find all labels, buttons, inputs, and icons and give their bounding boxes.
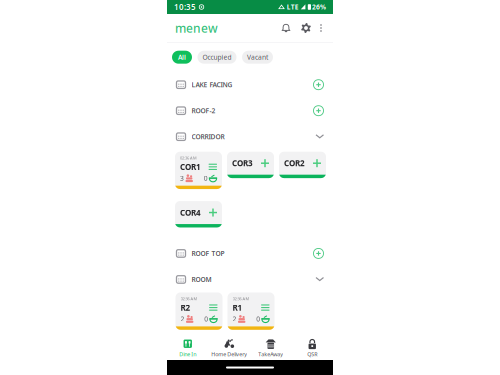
button[interactable]: ROOM bbox=[167, 266, 333, 292]
button[interactable]: ROOF-2 bbox=[167, 98, 333, 124]
button[interactable]: Occupied bbox=[197, 51, 236, 64]
staticText: COR4 bbox=[180, 207, 201, 218]
staticText: ROOM bbox=[191, 275, 211, 284]
button[interactable]: 02:36 AM bbox=[175, 152, 222, 189]
staticText: 02:36 AM bbox=[180, 296, 197, 301]
staticText: 02:36 AM bbox=[232, 296, 249, 301]
staticText: LAKE FACING bbox=[191, 80, 232, 89]
button[interactable]: Settings bbox=[299, 20, 313, 36]
button[interactable]: 02:36 AM bbox=[175, 292, 222, 330]
staticText: 26% bbox=[312, 3, 326, 11]
button[interactable]: Home Delivery bbox=[208, 336, 250, 360]
staticText: TakeAway bbox=[258, 351, 283, 358]
staticText: Dine In bbox=[179, 351, 196, 358]
staticText: ROOF TOP bbox=[191, 249, 224, 258]
staticText: COR2 bbox=[284, 158, 305, 168]
staticText: Vacant bbox=[247, 53, 268, 62]
staticText: Home Delivery bbox=[211, 351, 247, 358]
button[interactable]: 02:36 AM bbox=[227, 292, 274, 330]
button[interactable]: LAKE FACING bbox=[167, 72, 333, 98]
button[interactable]: More options bbox=[315, 20, 327, 36]
staticText: 10:35 bbox=[174, 2, 196, 12]
staticText: 0 bbox=[204, 314, 208, 323]
button[interactable]: TakeAway bbox=[250, 336, 291, 360]
button[interactable]: COR2 bbox=[279, 152, 326, 178]
staticText: COR3 bbox=[232, 158, 253, 168]
staticText: 3 bbox=[180, 174, 184, 183]
button[interactable]: Vacant bbox=[242, 51, 273, 64]
staticText: CORRIDOR bbox=[191, 132, 224, 141]
staticText: 0 bbox=[256, 314, 260, 323]
button[interactable]: CORRIDOR bbox=[167, 124, 333, 150]
staticText: 2 bbox=[232, 314, 236, 323]
button[interactable]: All bbox=[172, 51, 192, 64]
staticText: R1 bbox=[232, 302, 242, 313]
staticText: COR1 bbox=[180, 161, 201, 172]
staticText: LTE bbox=[287, 3, 299, 11]
staticText: 0 bbox=[204, 174, 208, 183]
staticText: ROOF-2 bbox=[191, 106, 215, 115]
button[interactable]: COR3 bbox=[227, 152, 274, 178]
button[interactable]: QSR bbox=[291, 336, 333, 360]
staticText: Occupied bbox=[202, 53, 231, 62]
button[interactable]: ROOF TOP bbox=[167, 240, 333, 266]
button[interactable]: COR4 bbox=[175, 201, 222, 227]
staticText: 2 bbox=[180, 314, 184, 323]
staticText: 02:36 AM bbox=[180, 155, 197, 160]
staticText: menew bbox=[175, 20, 218, 36]
button[interactable]: Dine In bbox=[167, 336, 208, 360]
staticText: All bbox=[178, 53, 186, 62]
staticText: QSR bbox=[307, 351, 317, 358]
staticText: R2 bbox=[180, 302, 190, 313]
button[interactable]: Notifications bbox=[279, 20, 293, 36]
